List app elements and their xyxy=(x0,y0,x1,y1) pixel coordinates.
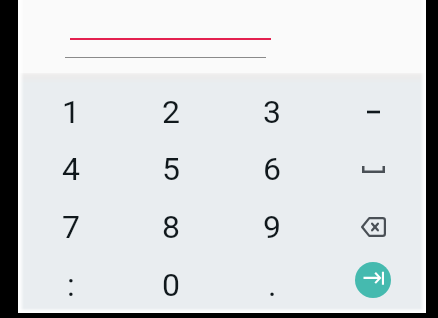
button[interactable]: 8 xyxy=(120,198,222,256)
button[interactable]: : xyxy=(20,256,122,314)
button[interactable]: 0 xyxy=(120,256,222,314)
staticText: . xyxy=(268,266,277,304)
staticText: 7 xyxy=(62,208,80,246)
staticText: 4 xyxy=(62,150,80,188)
button[interactable]: 9 xyxy=(221,198,323,256)
button[interactable]: 7 xyxy=(20,198,122,256)
staticText: 9 xyxy=(263,208,281,246)
button[interactable]: 6 xyxy=(221,140,323,198)
button[interactable]: . xyxy=(221,256,323,314)
button[interactable]: 1 xyxy=(20,83,122,141)
staticText: 8 xyxy=(162,208,180,246)
button[interactable]: 4 xyxy=(20,140,122,198)
staticText: 0 xyxy=(162,266,180,304)
staticText: 2 xyxy=(162,93,180,131)
button[interactable]: Backspace xyxy=(322,198,424,256)
button[interactable]: Next xyxy=(355,262,391,298)
button[interactable]: Next xyxy=(322,256,424,314)
button[interactable]: 5 xyxy=(120,140,222,198)
staticText: 1 xyxy=(62,93,80,131)
button[interactable]: 2 xyxy=(120,83,222,141)
staticText: 6 xyxy=(263,150,281,188)
staticText: 3 xyxy=(263,93,281,131)
staticText: : xyxy=(67,266,75,304)
staticText: 5 xyxy=(162,150,180,188)
button[interactable]: Minus xyxy=(322,83,424,141)
button[interactable]: Space xyxy=(322,140,424,198)
button[interactable]: 3 xyxy=(221,83,323,141)
